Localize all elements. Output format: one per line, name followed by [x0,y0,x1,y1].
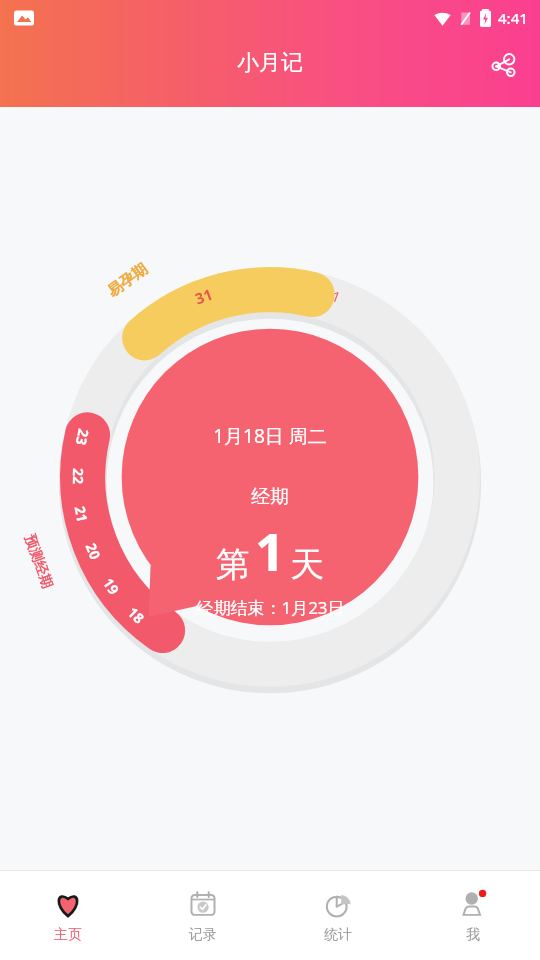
staticText: 23 [71,427,93,448]
staticText: 1 [329,286,344,307]
staticText: 31 [192,283,216,308]
staticText: 第 [216,543,250,586]
button[interactable]: 1 [55,262,485,692]
staticText: 22 [69,468,88,485]
staticText: 经期 [251,485,289,509]
staticText: 我 [466,926,480,944]
button[interactable]: 主页 [0,871,135,960]
staticText: 21 [70,504,92,525]
button[interactable]: 我 [405,871,540,960]
staticText: 20 [81,540,105,563]
staticText: 4:41 [498,8,528,28]
staticText: 19 [99,574,124,599]
staticText: 统计 [324,926,352,944]
staticText: 预测经期 [20,533,56,591]
button[interactable]: Share [478,39,530,91]
staticText: 小月记 [237,49,303,77]
button[interactable]: 统计 [270,871,405,960]
staticText: 记录 [189,926,217,944]
staticText: 18 [124,603,149,628]
staticText: 主页 [54,926,82,944]
button[interactable]: 记录 [135,871,270,960]
staticText: 易孕期 [104,260,151,301]
staticText: 1 [255,515,285,586]
staticText: 1月18日 周二 [213,423,327,449]
staticText: 天 [290,543,324,586]
staticText: 经期结束：1月23日 [196,596,345,619]
